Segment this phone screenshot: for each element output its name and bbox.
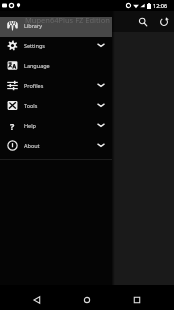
button[interactable]: Back xyxy=(24,292,49,307)
button[interactable]: Tools xyxy=(0,97,112,117)
staticText: Settings xyxy=(24,42,45,49)
staticText: Tools xyxy=(24,102,38,109)
button[interactable]: Language xyxy=(0,57,112,77)
button[interactable]: Refresh xyxy=(153,11,174,32)
button[interactable]: About xyxy=(0,137,112,157)
staticText: Language xyxy=(24,62,50,69)
button[interactable]: Search xyxy=(132,11,153,32)
button[interactable]: Library xyxy=(0,17,112,37)
staticText: Profiles xyxy=(24,82,44,89)
staticText: About xyxy=(24,142,40,149)
staticText: Mupen64Plus FZ Edition xyxy=(25,17,110,27)
button[interactable]: ? xyxy=(0,117,112,137)
button[interactable]: Settings xyxy=(0,37,112,57)
staticText: Library xyxy=(24,22,43,29)
button[interactable]: Profiles xyxy=(0,77,112,97)
button[interactable]: Recent apps xyxy=(124,292,149,307)
staticText: Help xyxy=(24,122,36,129)
staticText: Mupen64Plus FZ Edition xyxy=(25,17,110,25)
staticText: ? xyxy=(10,120,15,131)
staticText: 12:06 xyxy=(153,2,168,9)
button[interactable]: Home xyxy=(74,292,99,307)
